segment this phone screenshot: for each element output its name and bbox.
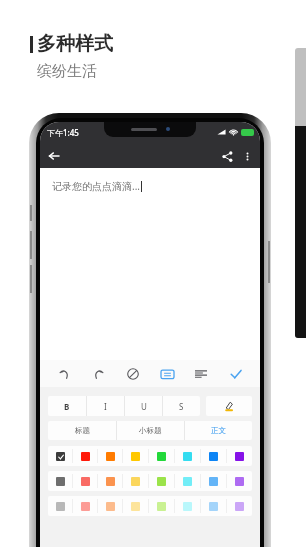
button[interactable] — [98, 446, 122, 466]
staticText: I — [104, 401, 107, 412]
button[interactable] — [98, 496, 122, 516]
button[interactable] — [48, 496, 72, 516]
staticText: 小标题 — [139, 426, 162, 435]
button[interactable]: U — [125, 396, 162, 416]
button[interactable]: Insert image — [123, 364, 143, 384]
staticText: 标题 — [75, 426, 90, 435]
button[interactable]: 小标题 — [117, 421, 184, 440]
button[interactable] — [98, 471, 122, 491]
staticText: U — [141, 401, 147, 412]
button[interactable] — [73, 446, 97, 466]
button[interactable] — [149, 496, 174, 516]
button[interactable] — [48, 446, 72, 466]
button[interactable] — [73, 471, 97, 491]
staticText: 记录您的点点滴滴... — [52, 179, 141, 193]
button[interactable] — [123, 471, 148, 491]
button[interactable] — [201, 471, 226, 491]
staticText: 正文 — [211, 426, 226, 435]
button[interactable] — [201, 446, 226, 466]
staticText: 下午1:45 — [47, 127, 79, 138]
button[interactable] — [123, 496, 148, 516]
button[interactable]: 正文 — [185, 421, 252, 440]
button[interactable] — [175, 471, 200, 491]
staticText: 缤纷生活 — [37, 62, 97, 81]
button[interactable]: Share — [217, 146, 237, 166]
button[interactable]: Align left — [191, 364, 211, 384]
button[interactable]: I — [87, 396, 124, 416]
button[interactable] — [73, 496, 97, 516]
button[interactable] — [227, 496, 252, 516]
button[interactable]: More options — [237, 146, 257, 166]
button[interactable]: Redo — [89, 364, 109, 384]
button[interactable] — [175, 446, 200, 466]
staticText: S — [179, 401, 184, 412]
button[interactable]: B — [48, 396, 86, 416]
button[interactable] — [227, 471, 252, 491]
button[interactable] — [175, 496, 200, 516]
staticText: B — [64, 401, 70, 412]
button[interactable]: Keyboard — [157, 364, 177, 384]
button[interactable]: Done — [226, 364, 246, 384]
button[interactable] — [48, 471, 72, 491]
button[interactable] — [227, 446, 252, 466]
button[interactable]: S — [163, 396, 200, 416]
button[interactable]: Highlighter — [206, 396, 252, 416]
button[interactable]: 标题 — [48, 421, 116, 440]
button[interactable] — [123, 446, 148, 466]
button[interactable] — [149, 446, 174, 466]
button[interactable] — [149, 471, 174, 491]
button[interactable]: Back — [44, 146, 64, 166]
staticText: 多种样式 — [37, 32, 113, 56]
button[interactable] — [201, 496, 226, 516]
button[interactable]: Undo — [54, 364, 74, 384]
